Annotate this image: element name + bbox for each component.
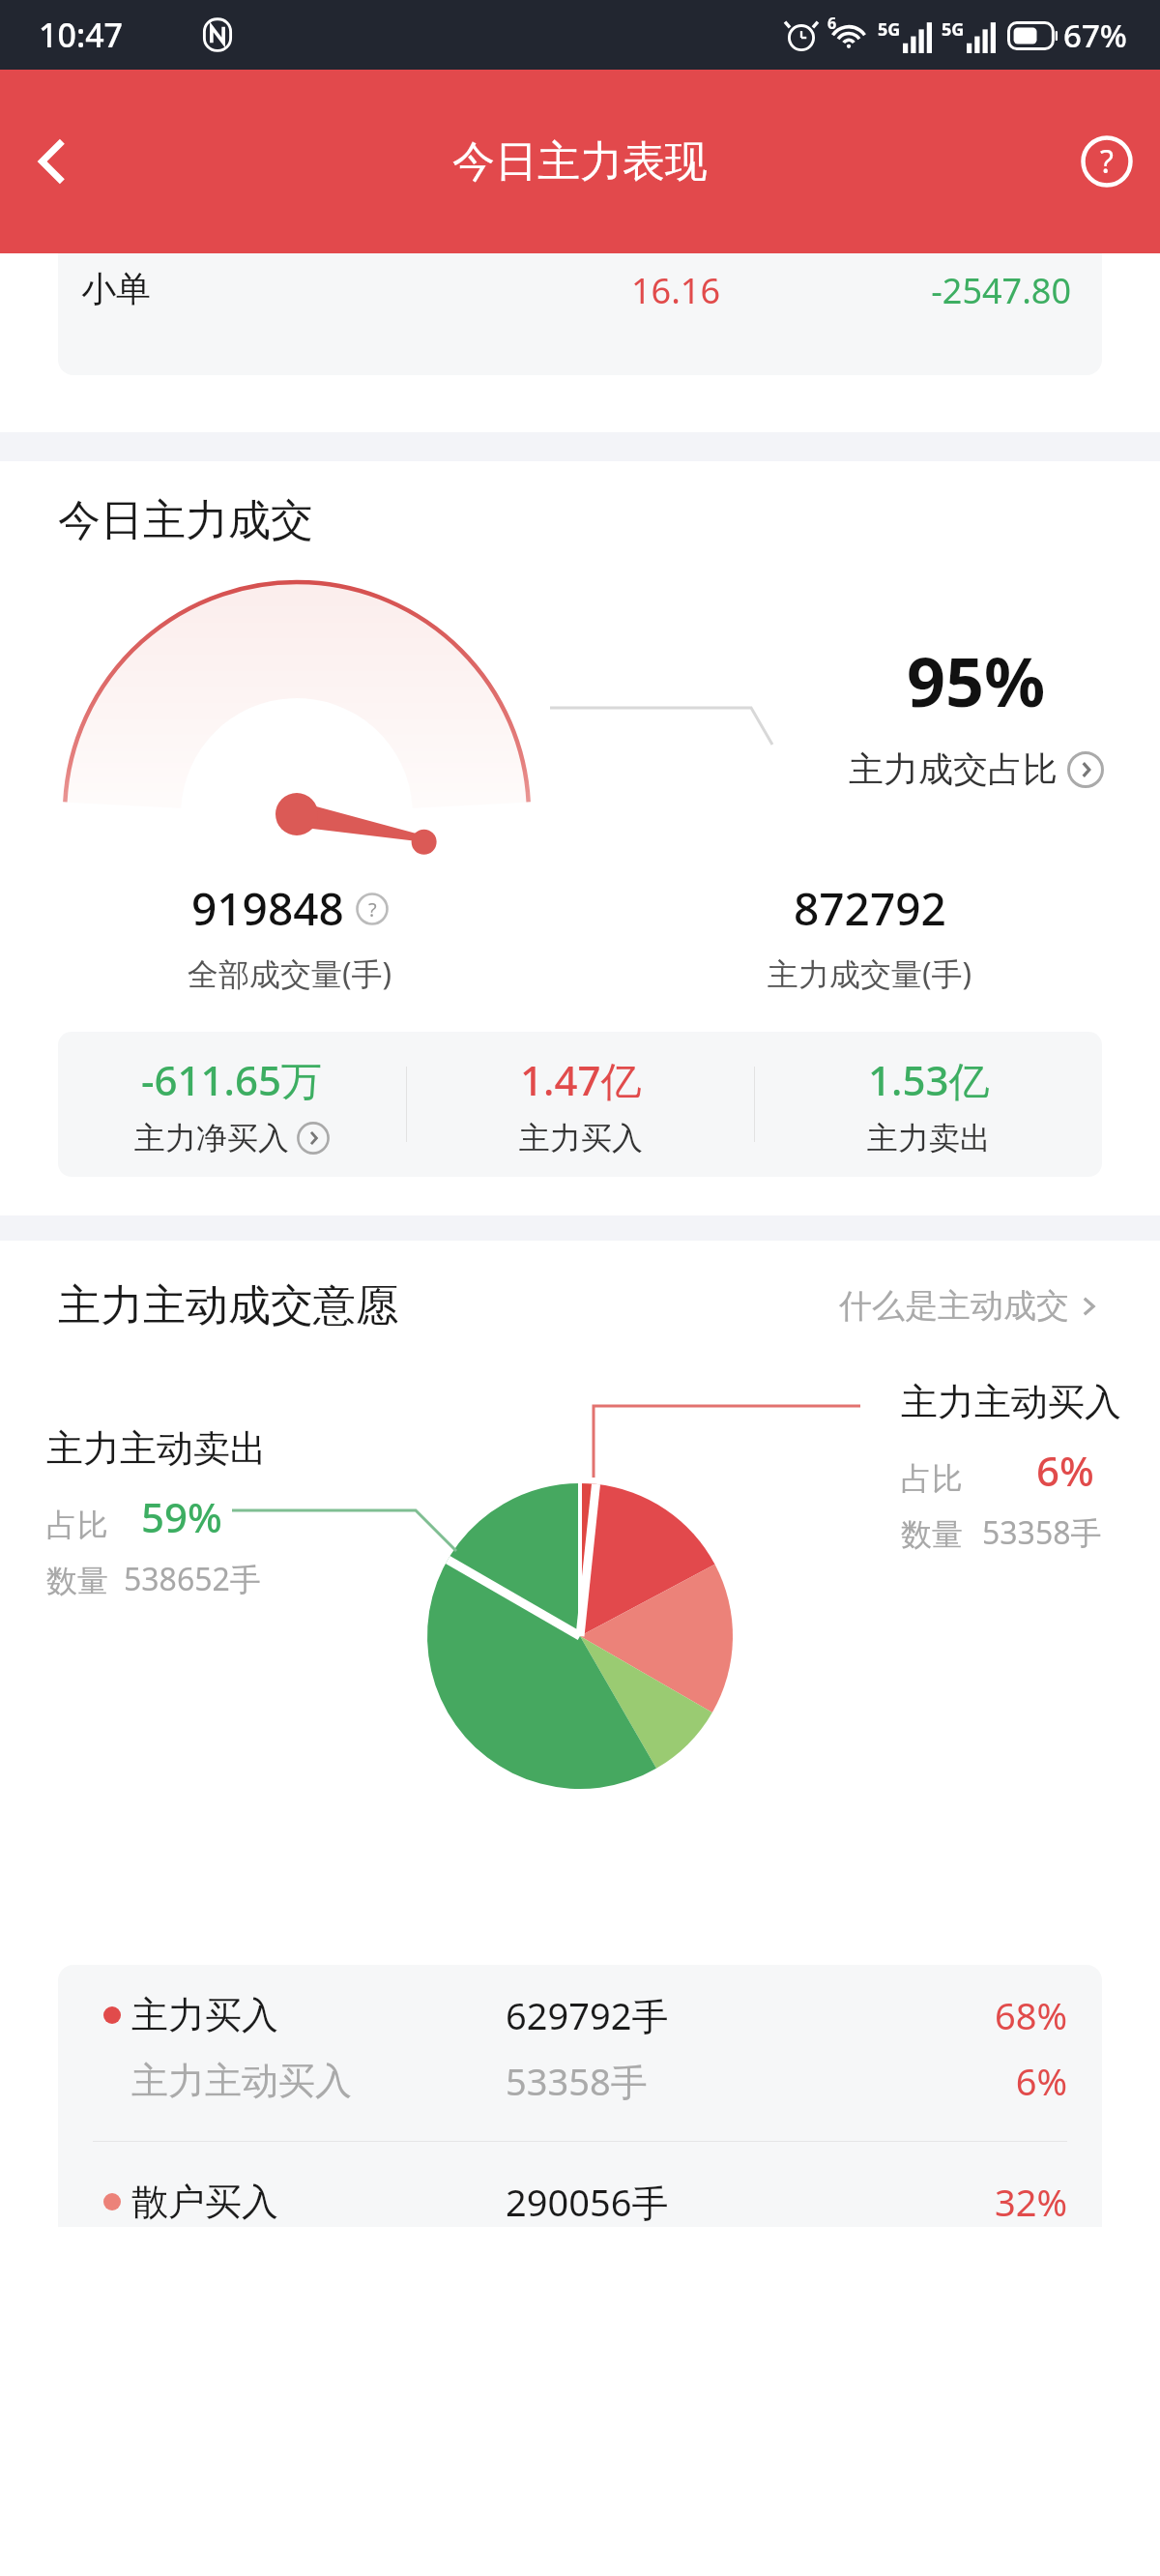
staticText: 主力净买入 <box>134 1119 289 1157</box>
staticText: -611.65万 <box>141 1052 323 1107</box>
staticText: 95% <box>907 634 1046 726</box>
staticText: 5G <box>878 17 901 42</box>
staticText: 占比 <box>46 1506 108 1544</box>
staticText: 占比 <box>901 1459 963 1498</box>
staticText: 主力主动买入 <box>131 2058 506 2104</box>
button[interactable]: 主力成交占比 <box>849 747 1104 791</box>
staticText: ? <box>1100 140 1114 183</box>
staticText: 今日主力成交 <box>58 494 313 547</box>
staticText: 数量 <box>46 1562 108 1600</box>
button[interactable]: 什么是主动成交 <box>839 1285 1102 1327</box>
button[interactable]: -611.65万 <box>58 1052 406 1157</box>
staticText: 小单 <box>81 267 401 310</box>
staticText: 67% <box>1063 14 1127 57</box>
staticText: 6 <box>827 13 837 34</box>
staticText: 68% <box>849 1990 1067 2040</box>
staticText: 6% <box>1036 1443 1094 1498</box>
staticText: 629792手 <box>506 1990 849 2040</box>
staticText: 什么是主动成交 <box>839 1285 1069 1327</box>
staticText: ? <box>368 896 377 922</box>
staticText: 872792 <box>794 878 946 939</box>
button[interactable]: Help <box>1054 108 1160 215</box>
staticText: 主力主动卖出 <box>46 1425 267 1472</box>
staticText: 主力买入 <box>131 1992 506 2038</box>
staticText: 主力买入 <box>519 1119 643 1157</box>
staticText: 主力主动成交意愿 <box>58 1279 839 1332</box>
staticText: -2547.80 <box>720 267 1071 314</box>
staticText: 散户买入 <box>131 2179 506 2225</box>
button[interactable]: 主力买入 <box>93 1990 1067 2040</box>
staticText: 53358手 <box>506 2056 849 2106</box>
staticText: 59% <box>141 1489 222 1544</box>
button[interactable]: Info <box>356 893 389 925</box>
staticText: 1.47亿 <box>520 1052 642 1107</box>
staticText: 32% <box>849 2177 1067 2227</box>
button[interactable]: 主力主动买入 <box>93 2056 1067 2106</box>
staticText: 538652手 <box>124 1558 261 1600</box>
staticText: 主力卖出 <box>867 1119 991 1157</box>
staticText: 主力成交占比 <box>849 747 1058 791</box>
staticText: 10:47 <box>39 13 124 57</box>
button[interactable]: 小单 <box>58 253 1102 375</box>
staticText: 6% <box>849 2056 1067 2106</box>
staticText: 主力主动买入 <box>901 1379 1121 1425</box>
button[interactable]: 1.53亿 <box>755 1052 1102 1157</box>
staticText: 主力成交量(手) <box>768 952 972 995</box>
staticText: 53358手 <box>982 1511 1102 1554</box>
button[interactable]: 1.47亿 <box>407 1052 754 1157</box>
staticText: 1.53亿 <box>868 1052 990 1107</box>
staticText: 5G <box>942 17 965 42</box>
staticText: 今日主力表现 <box>452 135 708 189</box>
button[interactable]: Back <box>0 108 106 215</box>
staticText: 16.16 <box>401 267 720 314</box>
staticText: 290056手 <box>506 2177 849 2227</box>
staticText: 919848 <box>191 878 344 939</box>
button[interactable]: 散户买入 <box>93 2177 1067 2227</box>
staticText: 数量 <box>901 1515 963 1554</box>
staticText: 全部成交量(手) <box>188 952 392 995</box>
